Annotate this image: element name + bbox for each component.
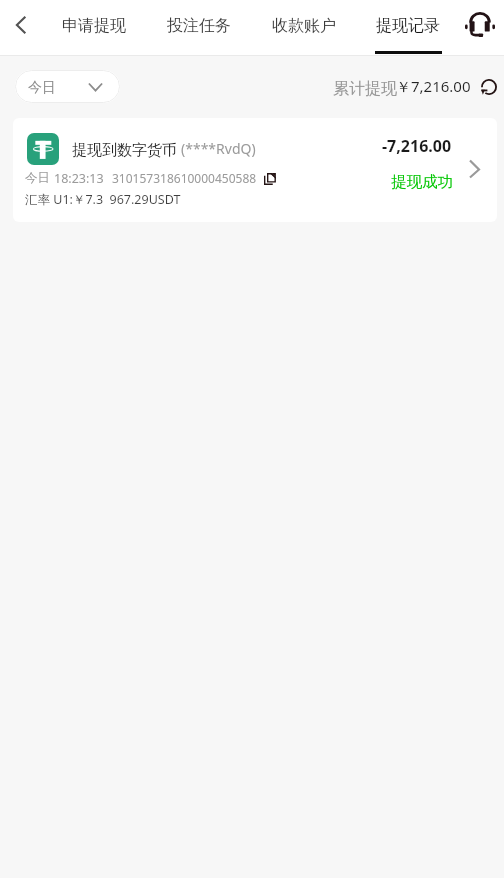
staticText: 收款账户 [272, 16, 336, 36]
staticText: ￥7,216.00 [396, 76, 471, 96]
staticText: 310157318610000450588 [112, 170, 257, 186]
staticText: 投注任务 [167, 16, 231, 36]
staticText: 申请提现 [62, 16, 126, 36]
button[interactable]: 今日 [15, 70, 120, 103]
staticText: 累计提现 [333, 79, 397, 99]
button[interactable]: 申请提现 [42, 0, 147, 55]
staticText: 18:23:13 [54, 170, 104, 187]
staticText: 提现到数字货币 [72, 141, 177, 160]
staticText: 汇率 U1:￥7.3 967.29USDT [25, 191, 181, 208]
button[interactable]: Back [0, 3, 43, 47]
button[interactable]: Refresh [477, 75, 501, 99]
staticText: (****RvdQ) [181, 139, 256, 158]
staticText: 今日 [28, 79, 56, 97]
button[interactable]: Customer service [457, 1, 503, 47]
staticText: 提现成功 [391, 172, 453, 192]
button[interactable]: 提现到数字货币 [13, 118, 497, 222]
button[interactable]: 提现记录 [356, 0, 461, 55]
button[interactable]: Copy [260, 169, 280, 189]
staticText: 今日 [25, 170, 50, 186]
button[interactable]: 收款账户 [252, 0, 357, 55]
staticText: -7,216.00 [382, 135, 452, 157]
button[interactable]: 投注任务 [147, 0, 252, 55]
staticText: 提现记录 [376, 16, 440, 36]
